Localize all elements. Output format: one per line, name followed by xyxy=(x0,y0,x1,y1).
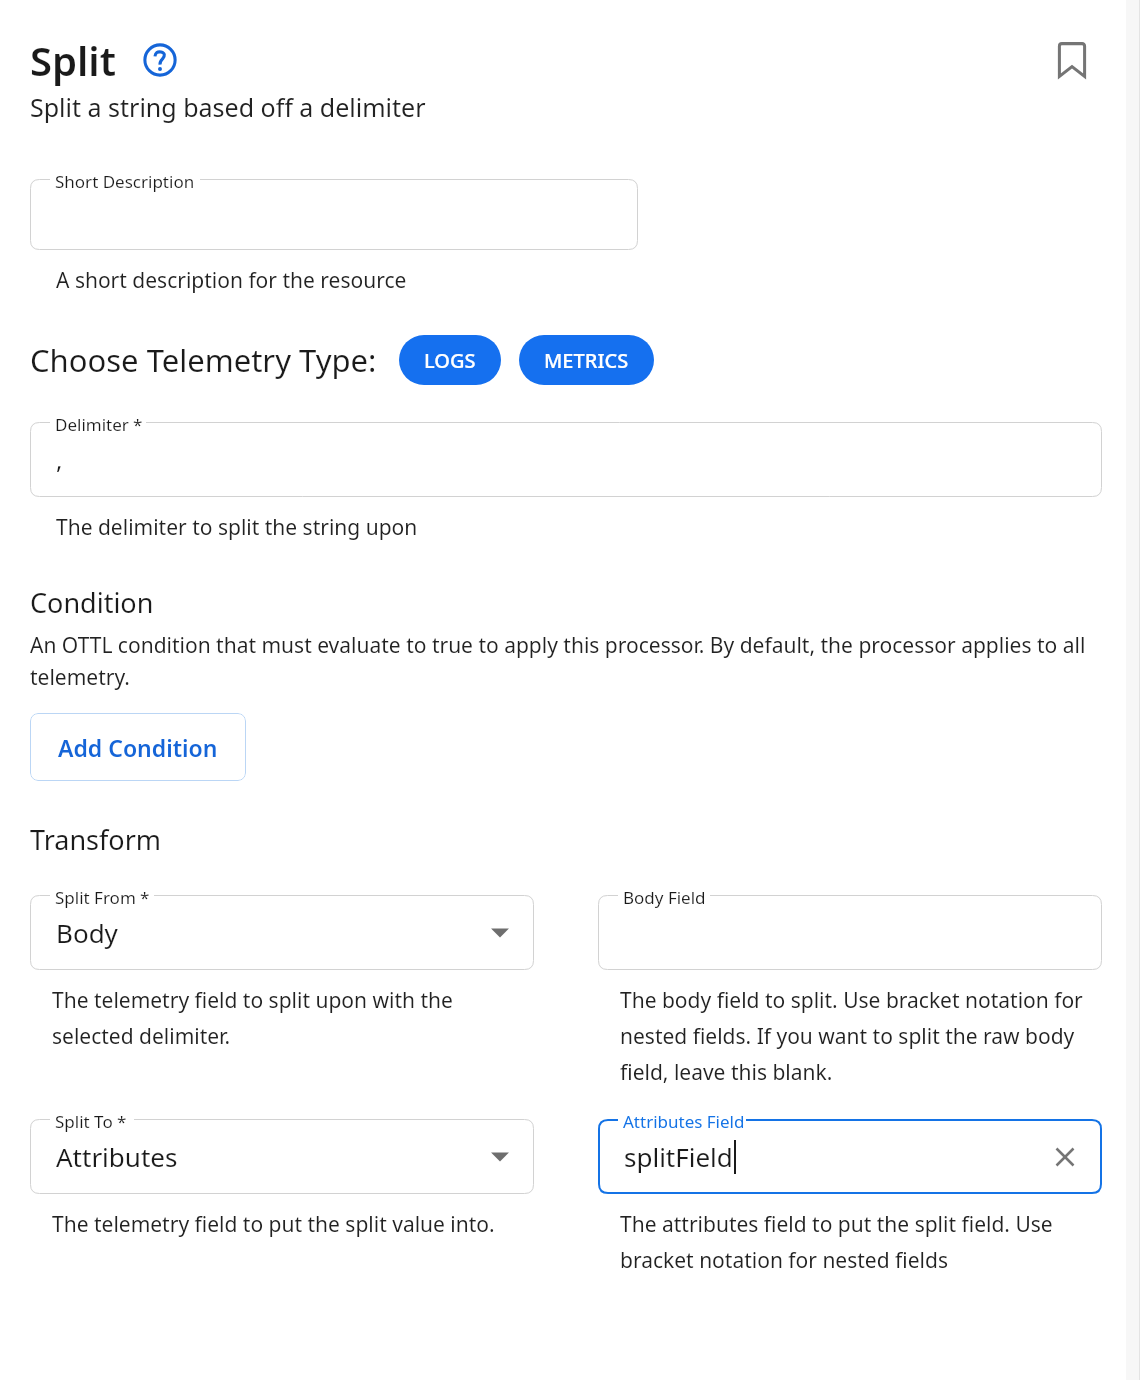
button[interactable]: Help xyxy=(138,38,182,82)
staticText: An OTTL condition that must evaluate to … xyxy=(30,631,1102,691)
staticText: LOGS xyxy=(424,347,476,374)
staticText: Split From xyxy=(55,886,136,909)
staticText: The delimiter to split the string upon xyxy=(56,513,418,542)
staticText: Delimiter xyxy=(55,413,129,436)
staticText: Body Field xyxy=(623,886,706,909)
staticText: Split To xyxy=(55,1110,113,1133)
staticText: The body field to split. Use bracket not… xyxy=(620,986,1102,1086)
staticText: A short description for the resource xyxy=(56,266,407,295)
staticText: Add Condition xyxy=(58,732,218,763)
staticText: Attributes xyxy=(56,1139,178,1174)
button[interactable]: Bookmark xyxy=(1042,30,1102,90)
staticText: The telemetry field to split upon with t… xyxy=(52,986,534,1050)
staticText: * xyxy=(140,886,150,909)
staticText: Attributes Field xyxy=(623,1110,745,1133)
staticText: The telemetry field to put the split val… xyxy=(52,1210,495,1239)
staticText: Condition xyxy=(30,584,154,621)
staticText: Short Description xyxy=(55,170,195,193)
staticText: Choose Telemetry Type: xyxy=(30,339,377,381)
button[interactable]: LOGS xyxy=(399,335,501,385)
staticText: Split xyxy=(30,33,116,87)
button[interactable]: METRICS xyxy=(519,335,654,385)
staticText: * xyxy=(133,413,143,436)
staticText: METRICS xyxy=(544,347,629,374)
staticText: The attributes field to put the split fi… xyxy=(620,1210,1102,1274)
staticText: Body xyxy=(56,915,118,950)
staticText: Transform xyxy=(30,821,162,858)
button[interactable]: Add Condition xyxy=(30,713,246,781)
staticText: , xyxy=(56,443,63,476)
staticText: splitField xyxy=(624,1139,733,1174)
staticText: Split a string based off a delimiter xyxy=(30,90,426,124)
staticText: * xyxy=(117,1110,127,1133)
